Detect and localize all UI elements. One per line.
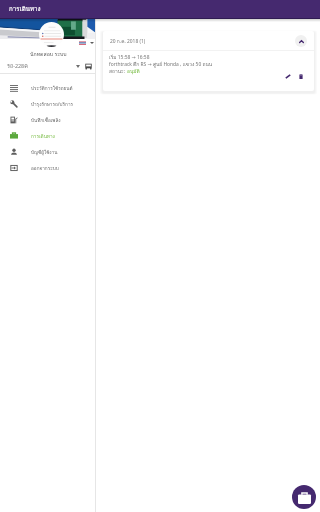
staticText: ออกจากระบบ [31, 165, 59, 172]
button[interactable]: การเดินทาง [0, 128, 96, 144]
button[interactable]: บัญชีผู้ใช้งาน [0, 144, 96, 160]
staticText: รถ-228ค [7, 62, 28, 71]
button[interactable]: ย่อ [295, 35, 307, 47]
staticText: ประวัติการใช้รถยนต์ [31, 85, 73, 92]
staticText: forthtrack ตึก RS → ศูนย์ Honda , แขวง 5… [109, 61, 213, 68]
button[interactable]: บันทึกเชื้อเพลิง [0, 112, 96, 128]
staticText: อนุมัติ [127, 69, 140, 75]
staticText: การเดินทาง [9, 4, 41, 14]
button[interactable]: เพิ่มการเดินทาง [292, 485, 316, 509]
button[interactable]: 20 ก.ค. 2018 (1) [103, 31, 314, 91]
staticText: บำรุงรักษารถ/บริการ [31, 101, 74, 108]
staticText: เริ่ม 15:58 → 16:58 [109, 54, 150, 61]
staticText: การเดินทาง [31, 133, 55, 140]
staticText: สถานะ: [109, 68, 127, 75]
staticText: 20 ก.ค. 2018 (1) [110, 37, 146, 45]
staticText: บันทึกเชื้อเพลิง [31, 117, 61, 124]
staticText: บัญชีผู้ใช้งาน [31, 149, 58, 156]
button[interactable]: ออกจากระบบ [0, 160, 96, 176]
button[interactable]: บำรุงรักษารถ/บริการ [0, 96, 96, 112]
button[interactable]: ลบ [296, 71, 306, 81]
button[interactable]: ประวัติการใช้รถยนต์ [0, 80, 96, 96]
button[interactable]: รถ-228ค [0, 59, 96, 73]
button[interactable]: แก้ไข [283, 71, 293, 81]
button[interactable]: เปลี่ยนภาษา [79, 41, 94, 45]
staticText: นักทดสอบ ระบบ [30, 50, 67, 58]
button[interactable]: รูปโปรไฟล์ [39, 22, 64, 47]
